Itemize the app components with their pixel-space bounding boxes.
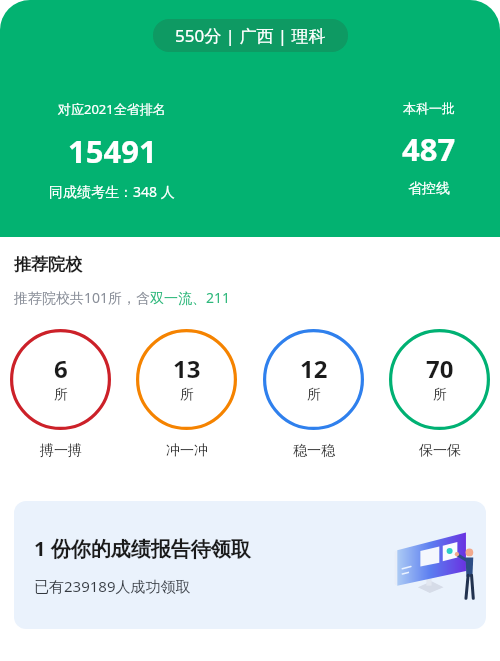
button[interactable]: 13 <box>136 329 237 460</box>
staticText: 对应2021全省排名 <box>58 100 166 118</box>
staticText: 所 <box>180 386 194 404</box>
button[interactable]: 12 <box>263 329 364 460</box>
staticText: 保一保 <box>419 442 461 460</box>
staticText: 所 <box>307 386 321 404</box>
button[interactable]: 70 <box>389 329 490 460</box>
staticText: 所 <box>54 386 68 404</box>
staticText: 15491 <box>68 130 157 172</box>
staticText: 已有239189人成功领取 <box>34 576 191 596</box>
staticText: 推荐院校共101所，含双一流、211 <box>14 288 231 307</box>
staticText: 冲一冲 <box>166 442 208 460</box>
staticText: 省控线 <box>408 180 450 198</box>
staticText: 550分 | 广西 | 理科 <box>175 24 326 47</box>
staticText: 所 <box>433 386 447 404</box>
staticText: 推荐院校 <box>14 254 82 275</box>
staticText: 同成绩考生：348 人 <box>49 182 175 201</box>
staticText: 搏一搏 <box>40 442 82 460</box>
staticText: 487 <box>402 128 456 170</box>
staticText: 稳一稳 <box>293 442 335 460</box>
staticText: 本科一批 <box>403 100 455 116</box>
button[interactable]: 1 份你的成绩报告待领取 <box>14 501 486 629</box>
other: 成绩报告插图 <box>392 528 478 602</box>
button[interactable]: 6 <box>10 329 111 460</box>
staticText: 13 <box>173 352 201 385</box>
staticText: 6 <box>54 352 68 385</box>
button[interactable]: 550分 | 广西 | 理科 <box>153 19 348 52</box>
staticText: 12 <box>300 352 328 385</box>
staticText: 70 <box>426 352 454 385</box>
staticText: 1 份你的成绩报告待领取 <box>34 535 251 562</box>
